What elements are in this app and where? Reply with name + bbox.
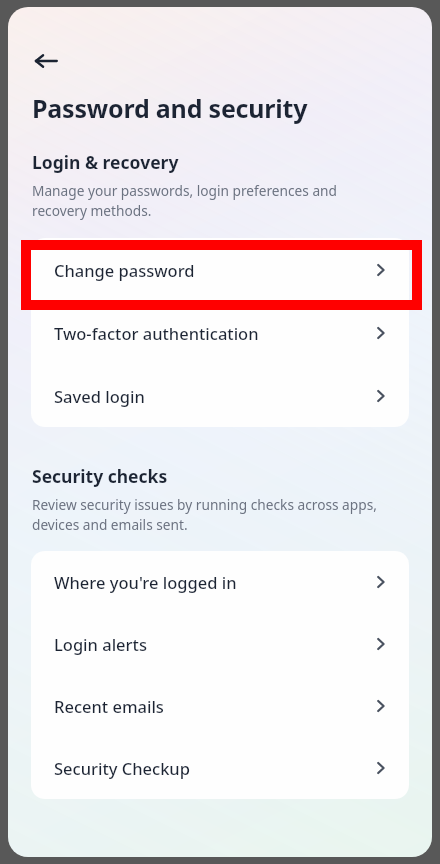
- button[interactable]: Two-factor authentication: [31, 301, 409, 364]
- button[interactable]: Back: [22, 37, 70, 85]
- staticText: Manage your passwords, login preferences…: [32, 181, 390, 220]
- button[interactable]: Saved login: [31, 364, 409, 427]
- button[interactable]: Login alerts: [31, 613, 409, 675]
- staticText: Recent emails: [54, 695, 371, 717]
- staticText: Saved login: [54, 385, 371, 407]
- button[interactable]: Change password: [31, 238, 409, 301]
- button[interactable]: Where you're logged in: [31, 551, 409, 613]
- staticText: Login alerts: [54, 633, 371, 655]
- staticText: Security Checkup: [54, 757, 371, 779]
- staticText: Security checks: [32, 464, 168, 488]
- button[interactable]: Recent emails: [31, 675, 409, 737]
- staticText: Login & recovery: [32, 150, 179, 174]
- staticText: Where you're logged in: [54, 571, 371, 593]
- staticText: Review security issues by running checks…: [32, 495, 408, 534]
- staticText: Two-factor authentication: [54, 322, 371, 344]
- staticText: Password and security: [32, 91, 308, 125]
- button[interactable]: Security Checkup: [31, 737, 409, 799]
- staticText: Change password: [54, 259, 371, 281]
